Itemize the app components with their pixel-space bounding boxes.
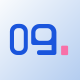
button[interactable]: 09	[0, 0, 80, 80]
